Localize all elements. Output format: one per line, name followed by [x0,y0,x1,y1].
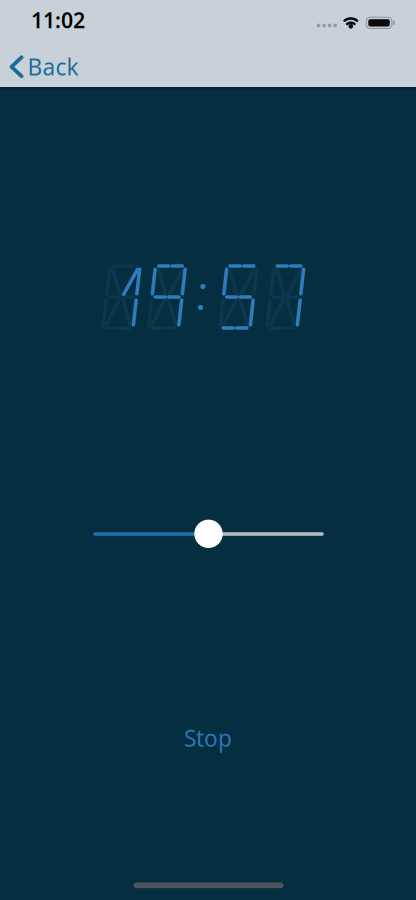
button[interactable]: Back [9,52,78,82]
staticText: 11:02 [31,6,85,34]
button[interactable]: Stop [184,723,232,753]
staticText: Back [27,52,78,82]
staticText: Stop [184,723,232,753]
button[interactable]: Volume [90,517,326,551]
